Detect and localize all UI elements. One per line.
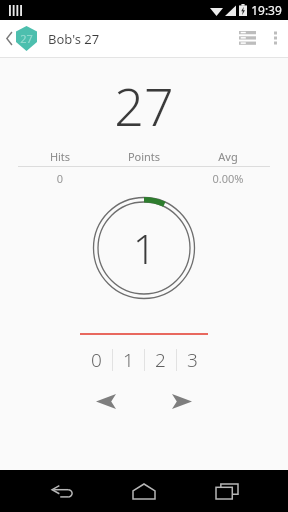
button[interactable]: Points	[102, 149, 186, 167]
button[interactable]: Next	[167, 389, 197, 414]
button[interactable]: 3	[177, 345, 208, 375]
staticText: 2	[155, 347, 166, 373]
button[interactable]: Previous	[91, 389, 121, 414]
staticText: 19:39	[251, 2, 282, 18]
button[interactable]: Avg	[186, 149, 270, 167]
staticText: Hits	[18, 149, 102, 164]
staticText: 0	[91, 347, 102, 373]
staticText: 0.00%	[186, 171, 270, 186]
staticText: Bob's 27	[48, 30, 100, 48]
button[interactable]: Back	[41, 474, 83, 509]
staticText: Points	[102, 149, 186, 164]
staticText: 27	[20, 31, 33, 46]
button[interactable]: 1	[113, 345, 144, 375]
staticText: 3	[187, 347, 198, 373]
button[interactable]: More options	[266, 23, 288, 54]
button[interactable]: 0	[80, 345, 112, 375]
staticText: 1	[133, 221, 156, 275]
button[interactable]: Recent apps	[206, 474, 248, 509]
staticText: 1	[123, 347, 134, 373]
button[interactable]: Navigate up	[0, 22, 40, 55]
button[interactable]: 2	[145, 345, 176, 375]
staticText: 0	[18, 171, 102, 186]
staticText: 27	[114, 70, 174, 141]
button[interactable]: List view	[229, 23, 266, 54]
staticText: Avg	[186, 149, 270, 164]
button[interactable]: Home	[123, 474, 165, 509]
button[interactable]: Hits	[18, 149, 102, 167]
